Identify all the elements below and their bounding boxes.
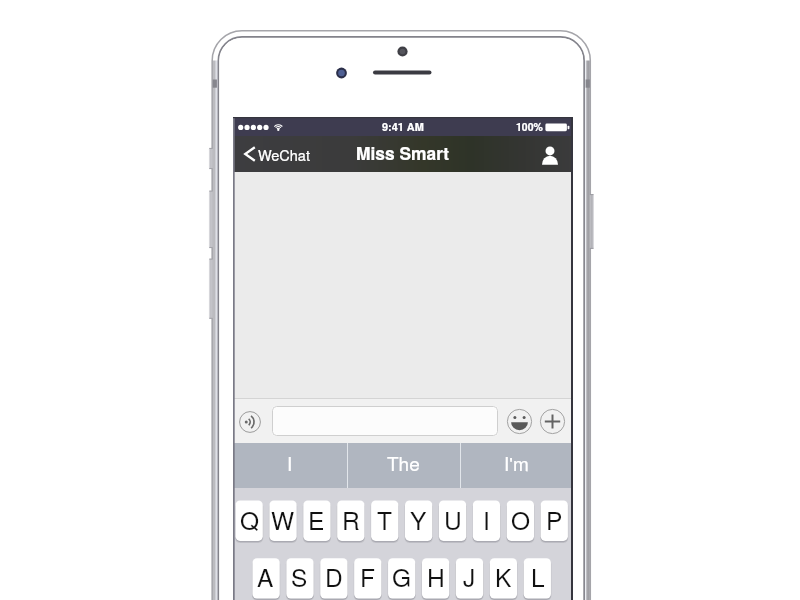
button[interactable]: D — [320, 558, 347, 598]
staticText: J — [463, 559, 476, 594]
button[interactable]: Contact profile — [531, 136, 573, 172]
staticText: I — [483, 502, 490, 537]
button[interactable]: More options — [540, 409, 565, 434]
staticText: K — [495, 559, 512, 594]
button[interactable]: H — [422, 558, 449, 598]
button[interactable]: G — [388, 558, 415, 598]
staticText: T — [377, 502, 392, 537]
staticText: The — [387, 449, 420, 476]
button[interactable]: The — [347, 443, 460, 488]
staticText: Y — [410, 502, 427, 537]
staticText: U — [444, 502, 462, 537]
staticText: I — [287, 449, 293, 476]
button[interactable]: E — [303, 501, 330, 541]
button[interactable]: I — [233, 443, 347, 488]
button[interactable] — [272, 406, 498, 436]
staticText: F — [360, 559, 375, 594]
staticText: G — [392, 559, 412, 594]
button[interactable]: S — [286, 558, 313, 598]
button[interactable]: I — [473, 501, 500, 541]
staticText: H — [427, 559, 445, 594]
button[interactable]: Y — [405, 501, 432, 541]
button[interactable]: Voice message — [239, 411, 261, 433]
button[interactable]: R — [337, 501, 364, 541]
button[interactable]: L — [524, 558, 551, 598]
button[interactable]: Emoji — [507, 409, 532, 434]
button[interactable]: A — [252, 558, 279, 598]
button[interactable]: O — [507, 501, 534, 541]
button[interactable]: I'm — [460, 443, 573, 488]
staticText: Q — [240, 502, 260, 537]
staticText: P — [546, 502, 563, 537]
button[interactable]: WeChat — [233, 136, 322, 172]
button[interactable]: W — [269, 501, 296, 541]
button[interactable]: K — [490, 558, 517, 598]
button[interactable]: T — [371, 501, 398, 541]
staticText: E — [308, 502, 325, 537]
button[interactable]: Q — [236, 501, 263, 541]
staticText: L — [531, 559, 545, 594]
staticText: 9:41 AM — [382, 119, 424, 135]
staticText: 100% — [516, 119, 543, 134]
button[interactable]: U — [439, 501, 466, 541]
button[interactable]: F — [354, 558, 381, 598]
staticText: O — [511, 502, 531, 537]
staticText: Miss Smart — [356, 140, 450, 165]
staticText: W — [271, 502, 295, 537]
staticText: D — [325, 559, 343, 594]
staticText: R — [342, 502, 360, 537]
staticText: A — [257, 559, 274, 594]
staticText: I'm — [504, 449, 529, 476]
staticText: S — [291, 559, 308, 594]
button[interactable]: P — [541, 501, 568, 541]
staticText: WeChat — [258, 144, 310, 165]
button[interactable]: J — [456, 558, 483, 598]
